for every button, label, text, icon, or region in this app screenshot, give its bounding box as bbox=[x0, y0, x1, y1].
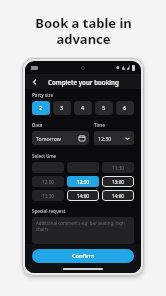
button[interactable]: 12:30 bbox=[67, 176, 99, 187]
staticText: Book a table in advance bbox=[35, 14, 132, 47]
button[interactable]: 12:00 bbox=[32, 176, 64, 187]
staticText: 14:00 bbox=[112, 193, 125, 199]
button[interactable]: 12:30 bbox=[94, 131, 134, 145]
button[interactable]: Back bbox=[29, 76, 40, 87]
staticText: Confirm bbox=[72, 252, 95, 260]
button[interactable]: Additional comments e.g. bar seating, hi… bbox=[32, 217, 134, 244]
button[interactable]: 2 bbox=[32, 101, 50, 115]
staticText: 4 bbox=[81, 104, 85, 112]
staticText: Select time bbox=[32, 153, 57, 159]
button[interactable]: 4 bbox=[74, 101, 92, 115]
button[interactable]: 13:00 bbox=[102, 176, 134, 187]
staticText: 6 bbox=[123, 104, 127, 112]
staticText: Date bbox=[32, 122, 43, 128]
button[interactable]: 5 bbox=[95, 101, 113, 115]
staticText: Time bbox=[94, 122, 105, 128]
staticText: Special request bbox=[32, 208, 66, 214]
staticText: 13:00 bbox=[112, 179, 125, 185]
staticText: Tomorrow bbox=[36, 135, 61, 142]
button[interactable]: 13:30 bbox=[32, 190, 64, 201]
staticText: Complete your booking bbox=[48, 78, 119, 86]
staticText: 12:00 bbox=[42, 179, 55, 185]
staticText: 3 bbox=[60, 104, 64, 112]
button[interactable]: 6 bbox=[116, 101, 134, 115]
staticText: Additional comments e.g. bar seating, hi… bbox=[36, 220, 130, 232]
button[interactable]: Confirm bbox=[32, 249, 134, 263]
button[interactable]: 3 bbox=[53, 101, 71, 115]
button[interactable]: Tomorrow bbox=[32, 131, 89, 145]
staticText: 2 bbox=[39, 104, 43, 112]
staticText: 14:00 bbox=[77, 193, 90, 199]
button[interactable]: 14:00 bbox=[102, 190, 134, 201]
staticText: 13:30 bbox=[42, 193, 55, 199]
staticText: 5 bbox=[102, 104, 106, 112]
staticText: 12:30 bbox=[77, 179, 90, 185]
staticText: 11:30 bbox=[112, 165, 125, 171]
staticText: 12:30 bbox=[98, 135, 112, 142]
staticText: Party size bbox=[32, 92, 54, 98]
button[interactable]: 14:00 bbox=[67, 190, 99, 201]
button[interactable]: 11:30 bbox=[102, 162, 134, 173]
